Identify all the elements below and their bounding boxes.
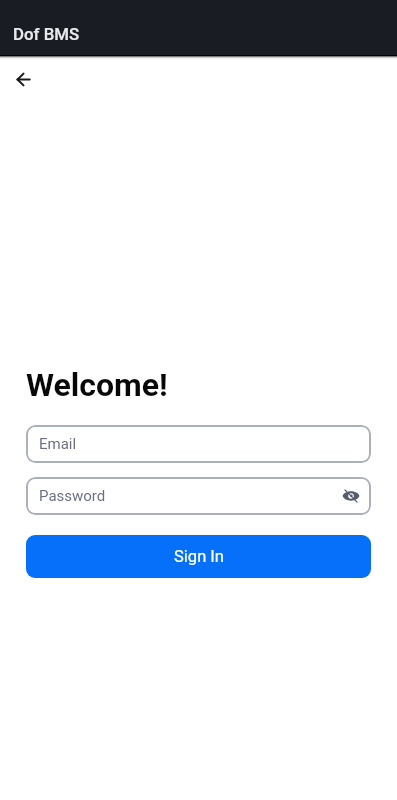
button[interactable]: Back bbox=[6, 62, 40, 96]
staticText: Sign In bbox=[174, 547, 224, 566]
staticText: Welcome! bbox=[26, 366, 168, 404]
button[interactable]: Email bbox=[26, 425, 371, 463]
staticText: Email bbox=[39, 435, 77, 453]
button[interactable]: Password bbox=[26, 477, 371, 515]
staticText: Password bbox=[39, 487, 106, 505]
button[interactable]: Sign In bbox=[26, 535, 371, 578]
button[interactable]: Show password bbox=[339, 484, 363, 508]
staticText: Dof BMS bbox=[13, 24, 80, 44]
